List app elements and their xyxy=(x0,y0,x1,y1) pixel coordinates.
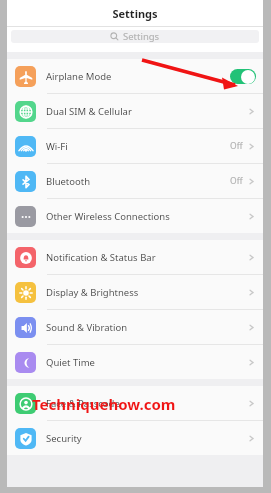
other: Open Wi-Fi xyxy=(247,142,256,151)
button[interactable]: Settings xyxy=(11,30,259,43)
button[interactable]: Display & Brightness xyxy=(7,275,263,309)
staticText: Techniquehow.com xyxy=(32,394,176,414)
staticText: Face & Passcode xyxy=(46,397,120,410)
staticText: Off xyxy=(230,175,243,187)
other: Open Display & Brightness xyxy=(247,288,256,297)
staticText: Other Wireless Connections xyxy=(46,210,170,223)
staticText: Dual SIM & Cellular xyxy=(46,105,132,118)
staticText: Wi-Fi xyxy=(46,140,68,153)
button[interactable]: Face & Passcode xyxy=(7,386,263,420)
button[interactable]: Quiet Time xyxy=(7,345,263,379)
staticText: Off xyxy=(230,140,243,152)
other: Open Face & Passcode xyxy=(247,399,256,408)
button[interactable]: Airplane Mode xyxy=(7,59,263,93)
staticText: Settings xyxy=(112,6,158,21)
other: Open Security xyxy=(247,434,256,443)
staticText: Notification & Status Bar xyxy=(46,251,156,264)
staticText: Bluetooth xyxy=(46,175,91,188)
staticText: Security xyxy=(46,432,82,445)
button[interactable]: Other Wireless Connections xyxy=(7,199,263,233)
other: Open Notification & Status Bar xyxy=(247,253,256,262)
button[interactable]: Notification & Status Bar xyxy=(7,240,263,274)
button[interactable]: Dual SIM & Cellular xyxy=(7,94,263,128)
staticText: Sound & Vibration xyxy=(46,321,127,334)
button[interactable]: Bluetooth xyxy=(7,164,263,198)
staticText: Quiet Time xyxy=(46,356,95,369)
button[interactable]: Wi-Fi xyxy=(7,129,263,163)
staticText: Settings xyxy=(123,30,160,43)
button[interactable]: Airplane Mode toggle xyxy=(230,69,256,84)
staticText: Display & Brightness xyxy=(46,286,139,299)
button[interactable]: Sound & Vibration xyxy=(7,310,263,344)
other: Open Sound & Vibration xyxy=(247,323,256,332)
other: Open Bluetooth xyxy=(247,177,256,186)
staticText: Airplane Mode xyxy=(46,70,112,83)
button[interactable]: Security xyxy=(7,421,263,455)
other: Open Dual SIM & Cellular xyxy=(247,107,256,116)
other: Open Quiet Time xyxy=(247,358,256,367)
other: Open Other Wireless Connections xyxy=(247,212,256,221)
